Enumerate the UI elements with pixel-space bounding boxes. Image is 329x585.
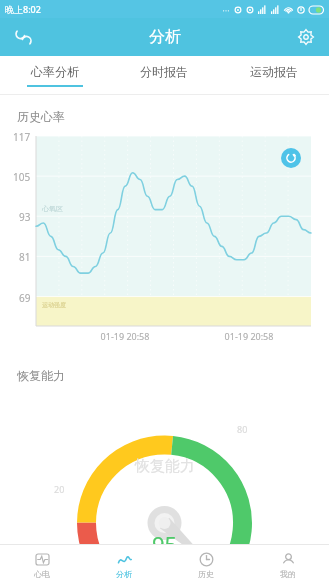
staticText: 心率分析 [31, 64, 79, 79]
button[interactable]: Settings [291, 22, 321, 52]
staticText: 晚上8:02 [5, 3, 41, 15]
staticText: 20 [54, 483, 65, 495]
staticText: 117 [13, 130, 31, 144]
staticText: 01-19 20:58 [187, 330, 311, 342]
staticText: 80 [237, 423, 248, 435]
staticText: 心氧区 [42, 204, 63, 213]
staticText: 运动报告 [250, 64, 298, 79]
staticText: 93 [19, 210, 31, 224]
staticText: 105 [13, 170, 31, 184]
button[interactable]: 运动报告 [219, 56, 329, 94]
staticText: 分时报告 [140, 64, 188, 79]
button[interactable]: 分时报告 [109, 56, 219, 94]
staticText: 95 [152, 529, 178, 559]
staticText: 69 [19, 291, 31, 305]
staticText: 运动强度 [42, 301, 66, 309]
button[interactable]: 心电 [0, 545, 83, 585]
staticText: 我的 [280, 569, 296, 579]
button[interactable]: Refresh [281, 148, 301, 168]
staticText: 心电 [34, 569, 50, 579]
staticText: 81 [19, 250, 31, 264]
staticText: 分析 [149, 27, 181, 47]
button[interactable]: 分析 [83, 545, 165, 585]
button[interactable]: Link device [8, 22, 38, 52]
button[interactable]: 我的 [247, 545, 329, 585]
staticText: 恢复能力 [135, 457, 195, 476]
staticText: 历史 [198, 569, 214, 579]
button[interactable]: 心率分析 [0, 56, 109, 94]
staticText: 01-19 20:58 [63, 330, 187, 342]
button[interactable]: 历史 [165, 545, 247, 585]
staticText: 恢复能力 [17, 368, 65, 383]
staticText: 历史心率 [17, 109, 65, 124]
staticText: 分析 [116, 569, 132, 579]
